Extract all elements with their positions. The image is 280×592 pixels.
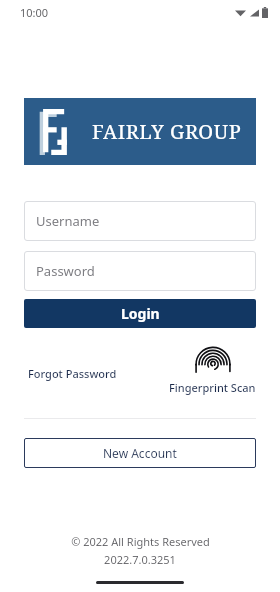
staticText: Fingerprint Scan: [169, 380, 256, 395]
button[interactable]: Fingerprint Scan: [169, 342, 256, 395]
staticText: Forgot Password: [28, 366, 117, 381]
button[interactable]: Username: [24, 201, 256, 241]
button[interactable]: New Account: [24, 438, 256, 468]
staticText: © 2022 All Rights Reserved: [71, 534, 210, 549]
button[interactable]: Password: [24, 251, 256, 291]
staticText: Username: [36, 212, 100, 230]
staticText: New Account: [103, 445, 177, 461]
staticText: 2022.7.0.3251: [104, 552, 176, 567]
staticText: Login: [121, 304, 160, 323]
staticText: FAIRLY GROUP: [92, 118, 242, 145]
staticText: Password: [36, 262, 95, 280]
button[interactable]: Login: [24, 299, 256, 328]
button[interactable]: Forgot Password: [24, 364, 121, 383]
staticText: 10:00: [20, 5, 49, 20]
